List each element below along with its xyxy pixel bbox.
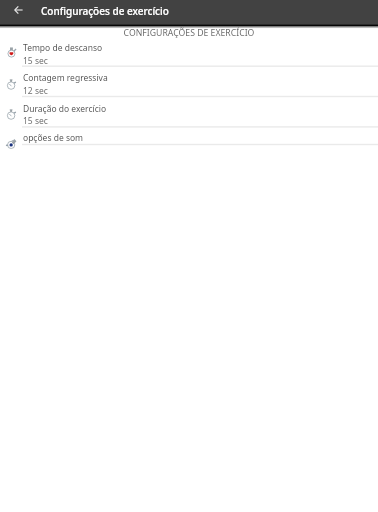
staticText: Configurações de exercício — [41, 4, 169, 18]
staticText: 15 sec — [23, 115, 48, 127]
staticText: 15 sec — [23, 55, 48, 67]
button[interactable]: opções de som — [0, 127, 378, 144]
button[interactable]: Duração do exercício — [0, 97, 378, 126]
staticText: CONFIGURAÇÕES DE EXERCÍCIO — [0, 27, 378, 39]
button[interactable]: Navigate up — [10, 1, 27, 18]
staticText: opções de som — [23, 132, 84, 144]
staticText: Contagem regressiva — [23, 72, 108, 84]
button[interactable]: Contagem regressiva — [0, 67, 378, 96]
staticText: Duração do exercício — [23, 103, 107, 115]
button[interactable]: Tempo de descanso — [0, 35, 378, 65]
staticText: 12 sec — [23, 85, 48, 97]
staticText: Tempo de descanso — [23, 42, 103, 54]
